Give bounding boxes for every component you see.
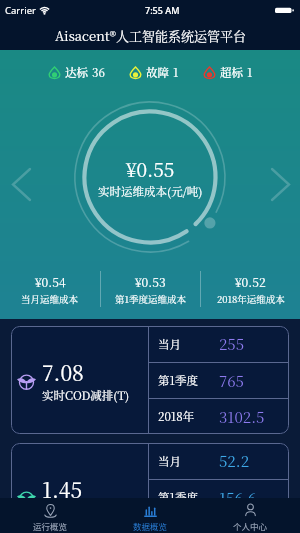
staticText: 36 — [92, 64, 105, 81]
button[interactable]: 个人中心 — [200, 498, 300, 533]
staticText: 当月运维成本 — [21, 292, 79, 306]
staticText: 当月 — [158, 453, 219, 470]
staticText: 7:55 AM — [145, 4, 180, 16]
staticText: 个人中心 — [233, 520, 268, 532]
staticText: 255 — [219, 333, 245, 355]
staticText: 2018年运维成本 — [217, 292, 285, 306]
staticText: 达标 — [65, 64, 88, 81]
staticText: ¥0.53 — [135, 273, 166, 290]
button[interactable]: 达标 — [46, 61, 107, 84]
staticText: 当月 — [158, 336, 219, 353]
button[interactable]: 数据概览 — [100, 498, 200, 533]
staticText: 实时运维成本(元/吨) — [98, 183, 203, 200]
staticText: 超标 — [220, 64, 243, 81]
staticText: 运行概览 — [33, 520, 68, 532]
staticText: Aisacent®人工智能系统运管平台 — [55, 26, 246, 45]
button[interactable]: ¥0.54 — [0, 265, 100, 313]
button[interactable]: ¥0.52 — [201, 265, 300, 313]
staticText: 1.45 — [42, 474, 83, 498]
staticText: Carrier — [5, 4, 36, 17]
button[interactable]: 故障 — [127, 61, 181, 84]
staticText: 156.6 — [219, 487, 257, 498]
staticText: 52.2 — [219, 450, 250, 472]
staticText: ¥0.55 — [126, 155, 175, 182]
staticText: 2018年 — [158, 408, 219, 425]
staticText: 第1季度运维成本 — [115, 292, 186, 306]
staticText: 1 — [173, 64, 179, 81]
button[interactable]: Next — [263, 163, 297, 205]
staticText: 1 — [247, 64, 253, 81]
staticText: 第1季度 — [158, 489, 219, 498]
staticText: ¥0.52 — [235, 273, 266, 290]
staticText: 故障 — [146, 64, 169, 81]
button[interactable]: ¥0.53 — [101, 265, 200, 313]
button[interactable]: 超标 — [201, 61, 255, 84]
button[interactable]: Previous — [4, 163, 38, 205]
staticText: 第1季度 — [158, 372, 219, 389]
button[interactable]: 运行概览 — [0, 498, 100, 533]
staticText: 3102.5 — [219, 406, 265, 428]
button[interactable]: 1.45 — [11, 443, 289, 498]
staticText: 实时COD减排(T) — [42, 387, 130, 404]
staticText: 765 — [219, 370, 244, 392]
staticText: ¥0.54 — [35, 273, 66, 290]
button[interactable]: 7.08 — [11, 326, 289, 434]
staticText: 7.08 — [42, 357, 84, 387]
staticText: 数据概览 — [133, 520, 168, 532]
